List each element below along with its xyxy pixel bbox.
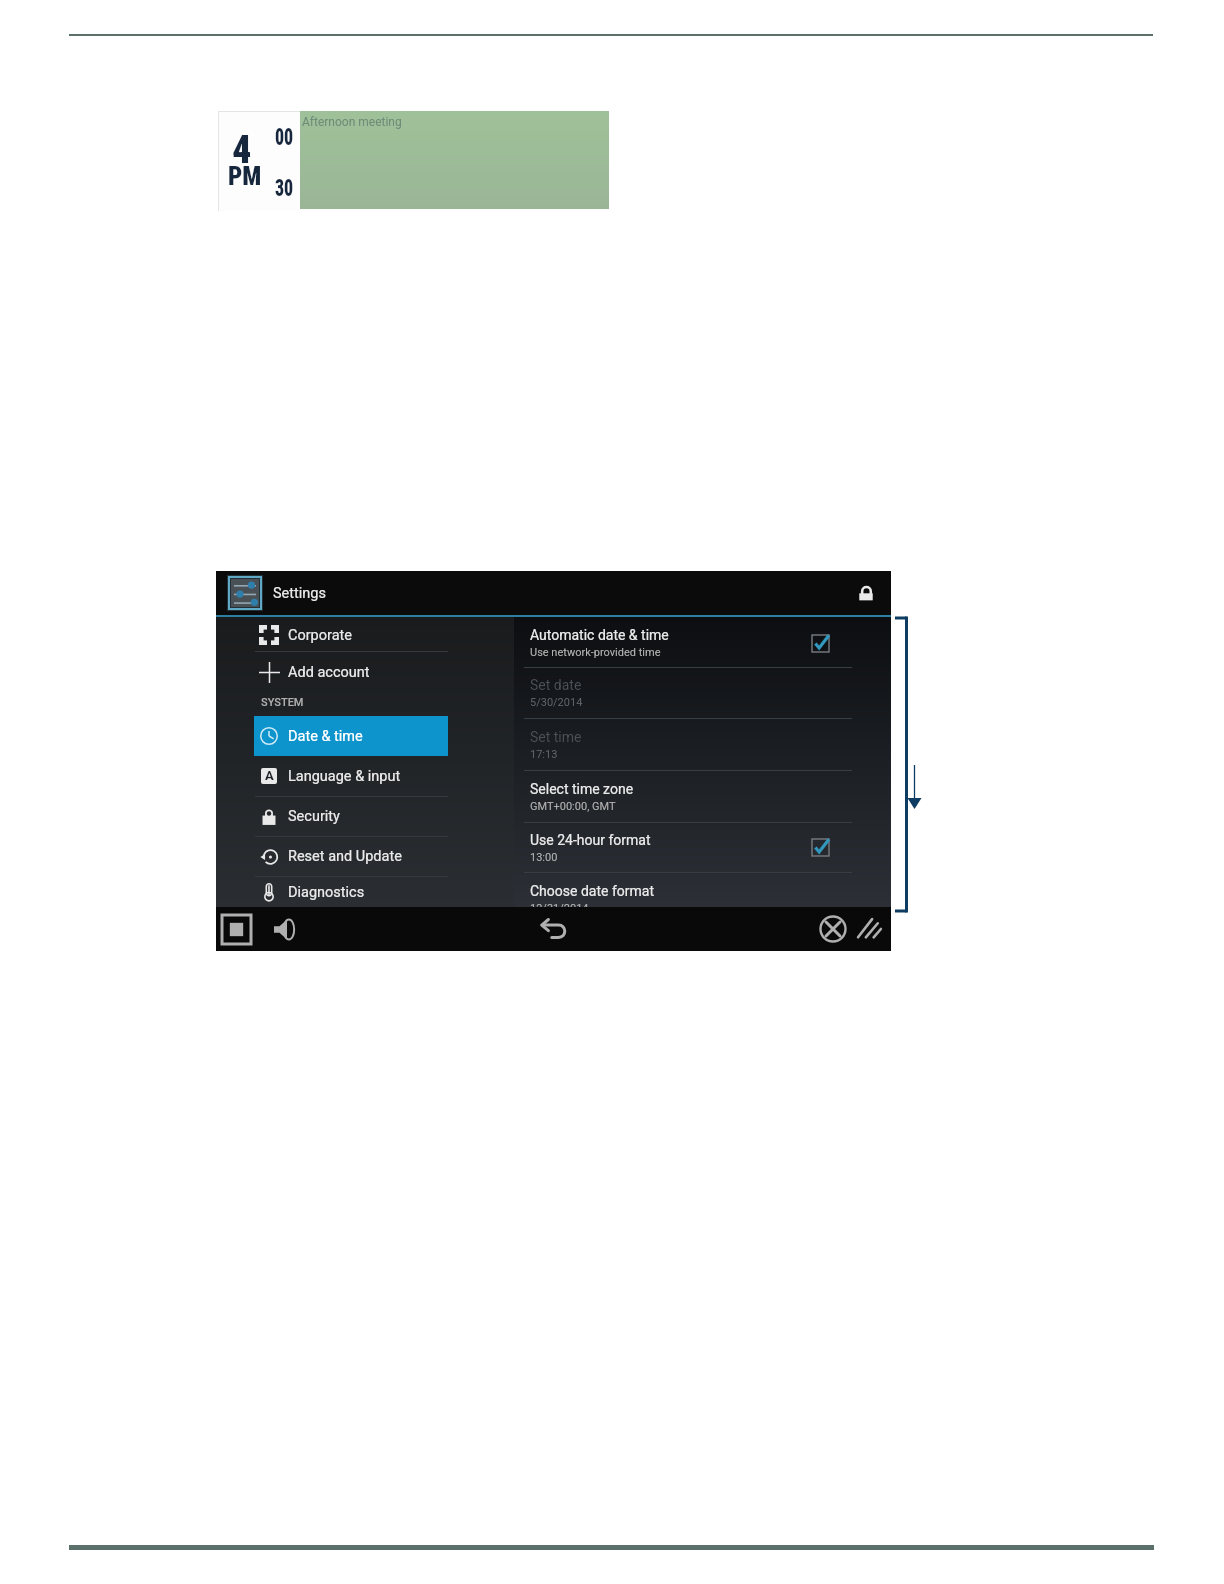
- staticText: Afternoon meeting: [302, 115, 402, 129]
- button[interactable]: Reset and Update: [254, 837, 448, 876]
- button[interactable]: Close: [817, 913, 849, 945]
- button[interactable]: Set time: [530, 719, 829, 770]
- button[interactable]: Back: [534, 909, 574, 949]
- staticText: 12/31/2014: [530, 902, 589, 907]
- staticText: Set date: [530, 677, 582, 693]
- staticText: Reset and Update: [288, 848, 402, 865]
- staticText: GMT+00:00, GMT: [530, 800, 616, 813]
- button[interactable]: Settings: [216, 571, 891, 615]
- button[interactable]: Unlock: [849, 576, 883, 610]
- staticText: 30: [275, 174, 293, 202]
- button[interactable]: Date & time: [254, 716, 448, 756]
- button[interactable]: Add account: [254, 652, 448, 692]
- staticText: Add account: [288, 664, 370, 681]
- staticText: Date & time: [288, 728, 363, 745]
- button[interactable]: Toggle Automatic date & time: [812, 635, 829, 652]
- button[interactable]: Diagnostics: [254, 877, 448, 907]
- button[interactable]: Choose date format: [530, 873, 829, 907]
- staticText: Language & input: [288, 768, 401, 785]
- staticText: 13:00: [530, 851, 558, 864]
- staticText: Settings: [273, 585, 326, 602]
- staticText: 00: [275, 123, 293, 151]
- staticText: Security: [288, 808, 340, 825]
- staticText: Select time zone: [530, 781, 634, 797]
- button[interactable]: Signal: [855, 914, 885, 944]
- staticText: Corporate: [288, 627, 352, 644]
- staticText: Choose date format: [530, 883, 654, 899]
- staticText: Automatic date & time: [530, 627, 669, 643]
- button[interactable]: Volume: [269, 914, 299, 944]
- button[interactable]: A: [254, 756, 448, 796]
- staticText: PM: [228, 162, 262, 191]
- staticText: 4: [232, 128, 252, 173]
- button[interactable]: Toggle Use 24-hour format: [812, 839, 829, 856]
- staticText: A: [265, 768, 274, 783]
- staticText: 17:13: [530, 748, 558, 761]
- staticText: Diagnostics: [288, 884, 365, 901]
- button[interactable]: Select time zone: [530, 771, 829, 822]
- button[interactable]: Set date: [530, 668, 829, 718]
- staticText: 5/30/2014: [530, 696, 583, 709]
- button[interactable]: Automatic date & time: [530, 619, 829, 667]
- button[interactable]: Screenshot: [219, 912, 253, 946]
- staticText: Set time: [530, 729, 582, 745]
- button[interactable]: Corporate: [254, 619, 448, 651]
- button[interactable]: Security: [254, 797, 448, 836]
- button[interactable]: Settings: [227, 575, 263, 611]
- staticText: Use 24-hour format: [530, 832, 651, 848]
- button[interactable]: Use 24-hour format: [530, 823, 829, 872]
- staticText: SYSTEM: [261, 696, 304, 709]
- staticText: Use network-provided time: [530, 646, 661, 659]
